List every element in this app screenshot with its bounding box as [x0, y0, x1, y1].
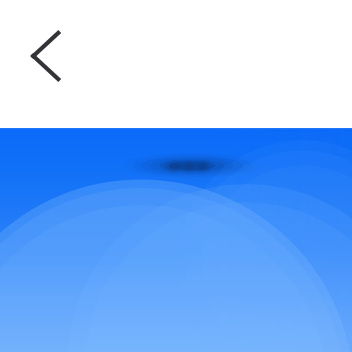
button[interactable]: Back — [20, 30, 72, 82]
